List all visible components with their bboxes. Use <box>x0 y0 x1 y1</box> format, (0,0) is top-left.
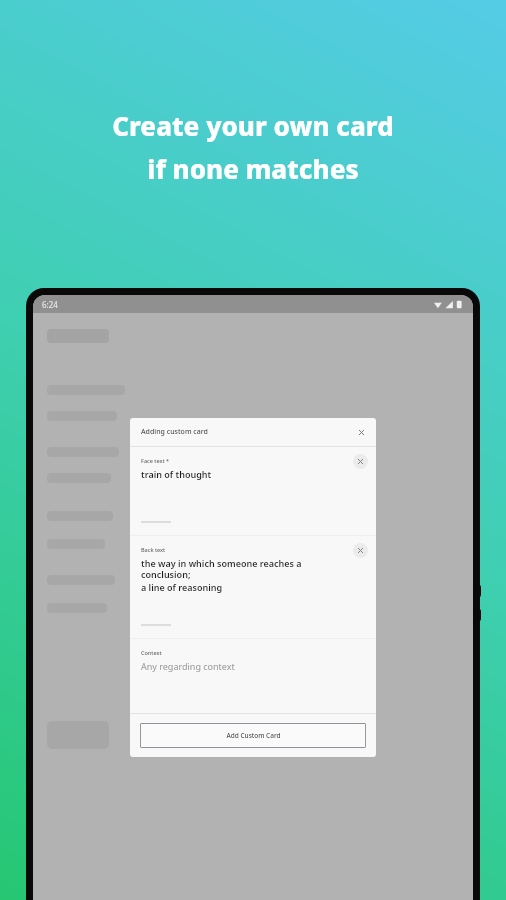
staticText: Create your own card <box>112 108 394 143</box>
button[interactable]: Back text <box>130 536 376 638</box>
staticText: the way in which someone reaches a concl… <box>141 557 348 581</box>
staticText: Back text <box>141 546 166 553</box>
button[interactable]: Add Custom Card <box>140 723 366 748</box>
button[interactable]: Close dialog <box>354 425 368 439</box>
staticText: 6:24 <box>42 299 58 310</box>
button[interactable]: Context <box>130 639 376 713</box>
staticText: Face text * <box>141 457 170 464</box>
button[interactable]: Clear back text <box>353 543 368 558</box>
staticText: Adding custom card <box>141 427 354 437</box>
staticText: Context <box>141 649 162 656</box>
staticText: if none matches <box>147 151 359 186</box>
button[interactable]: Face text * <box>130 447 376 535</box>
button[interactable]: Clear face text <box>353 454 368 469</box>
staticText: a line of reasoning <box>141 581 223 593</box>
staticText: train of thought <box>141 468 212 480</box>
staticText: Any regarding context <box>141 660 235 672</box>
staticText: Add Custom Card <box>226 731 281 740</box>
